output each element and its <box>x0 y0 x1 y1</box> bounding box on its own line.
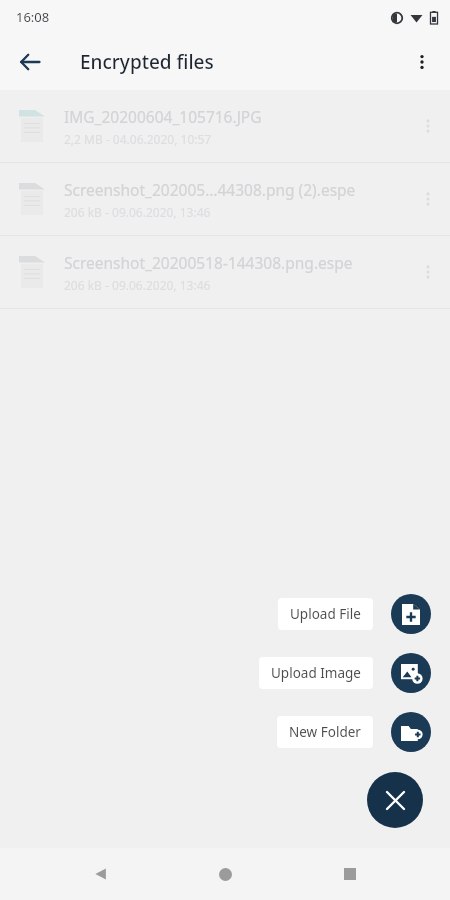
button[interactable]: New Folder <box>277 716 373 748</box>
button[interactable]: Upload File <box>391 594 431 634</box>
staticText: 206 kB - 09.06.2020, 13:46 <box>64 277 211 293</box>
button[interactable]: IMG_20200604_105716.JPG <box>0 90 450 162</box>
button[interactable]: Recents <box>326 850 374 898</box>
button[interactable]: New Folder <box>391 712 431 752</box>
button[interactable]: Screenshot_20200518-144308.png.espe <box>0 236 450 308</box>
button[interactable]: Back <box>77 850 125 898</box>
staticText: 206 kB - 09.06.2020, 13:46 <box>64 204 211 220</box>
button[interactable]: Home <box>201 850 249 898</box>
staticText: 16:08 <box>16 8 50 26</box>
button[interactable]: More options <box>398 38 446 86</box>
staticText: Screenshot_202005…44308.png (2).espe <box>64 179 356 200</box>
button[interactable]: Back <box>6 38 54 86</box>
button[interactable]: Upload Image <box>259 657 373 689</box>
button[interactable]: Upload File <box>278 598 373 630</box>
button[interactable]: Screenshot_202005…44308.png (2).espe <box>0 163 450 235</box>
staticText: New Folder <box>289 723 361 741</box>
staticText: 2,2 MB - 04.06.2020, 10:57 <box>64 131 212 147</box>
staticText: IMG_20200604_105716.JPG <box>64 106 262 127</box>
staticText: Upload File <box>290 605 361 623</box>
button[interactable]: Close menu <box>367 772 423 828</box>
staticText: Upload Image <box>271 664 361 682</box>
staticText: Encrypted files <box>80 49 214 75</box>
staticText: Screenshot_20200518-144308.png.espe <box>64 252 353 273</box>
button[interactable]: Upload Image <box>391 653 431 693</box>
